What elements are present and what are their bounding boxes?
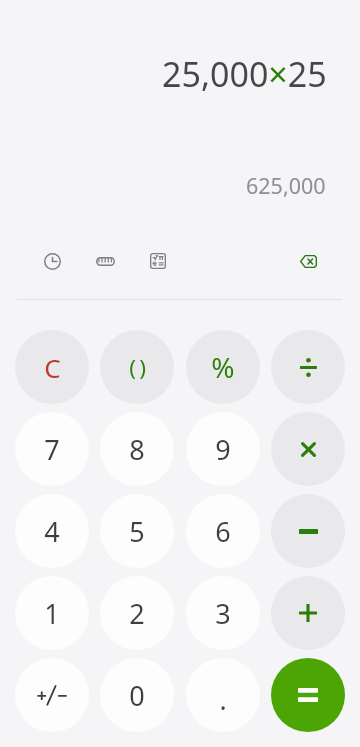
staticText: 3 [215, 595, 231, 632]
staticText: 0 [129, 677, 145, 714]
staticText: 5 [129, 513, 145, 550]
button[interactable]: Plus minus [15, 658, 89, 732]
button[interactable]: 0 [100, 658, 174, 732]
button[interactable]: ( ) [100, 330, 174, 404]
button[interactable]: % [186, 330, 260, 404]
staticText: 6 [215, 513, 231, 550]
staticText: 625,000 [246, 171, 326, 200]
staticText: % [211, 348, 235, 386]
staticText: 4 [44, 513, 60, 550]
staticText: 1 [44, 595, 60, 632]
staticText: C [44, 350, 61, 385]
button[interactable]: ÷ [271, 330, 345, 404]
button[interactable]: Backspace [286, 239, 330, 283]
button[interactable]: 3 [186, 576, 260, 650]
button[interactable]: 1 [15, 576, 89, 650]
staticText: . [219, 681, 227, 718]
staticText: 8 [129, 431, 145, 468]
button[interactable]: 8 [100, 412, 174, 486]
button[interactable]: Unit converter [83, 239, 127, 283]
button[interactable]: History [30, 239, 74, 283]
button[interactable]: + [271, 576, 345, 650]
button[interactable]: = [271, 658, 345, 732]
button[interactable]: 7 [15, 412, 89, 486]
button[interactable]: C [15, 330, 89, 404]
staticText: 9 [215, 431, 231, 468]
button[interactable]: 5 [100, 494, 174, 568]
button[interactable]: . [186, 658, 260, 732]
button[interactable]: 4 [15, 494, 89, 568]
button[interactable]: 2 [100, 576, 174, 650]
staticText: ( ) [129, 352, 145, 383]
button[interactable]: − [271, 494, 345, 568]
staticText: 2 [129, 595, 145, 632]
button[interactable]: 6 [186, 494, 260, 568]
staticText: 7 [44, 431, 60, 468]
button[interactable]: Scientific calculator [136, 239, 180, 283]
button[interactable]: × [271, 412, 345, 486]
staticText: 25,000×25 [162, 51, 327, 97]
button[interactable]: 9 [186, 412, 260, 486]
